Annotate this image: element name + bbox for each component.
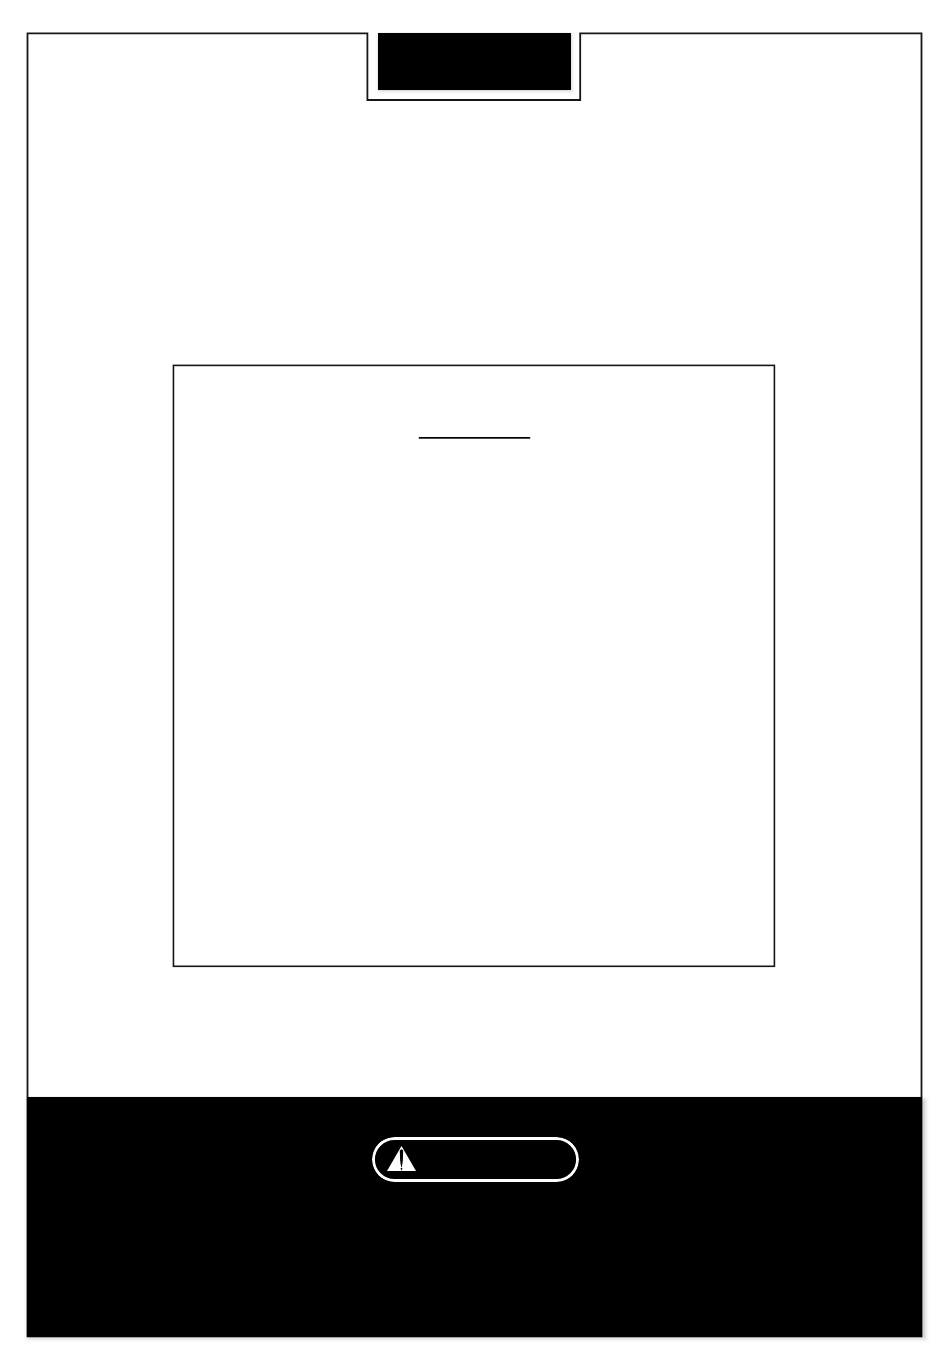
button[interactable]: Content card	[173, 365, 774, 966]
button[interactable]: Warning	[372, 1137, 579, 1182]
